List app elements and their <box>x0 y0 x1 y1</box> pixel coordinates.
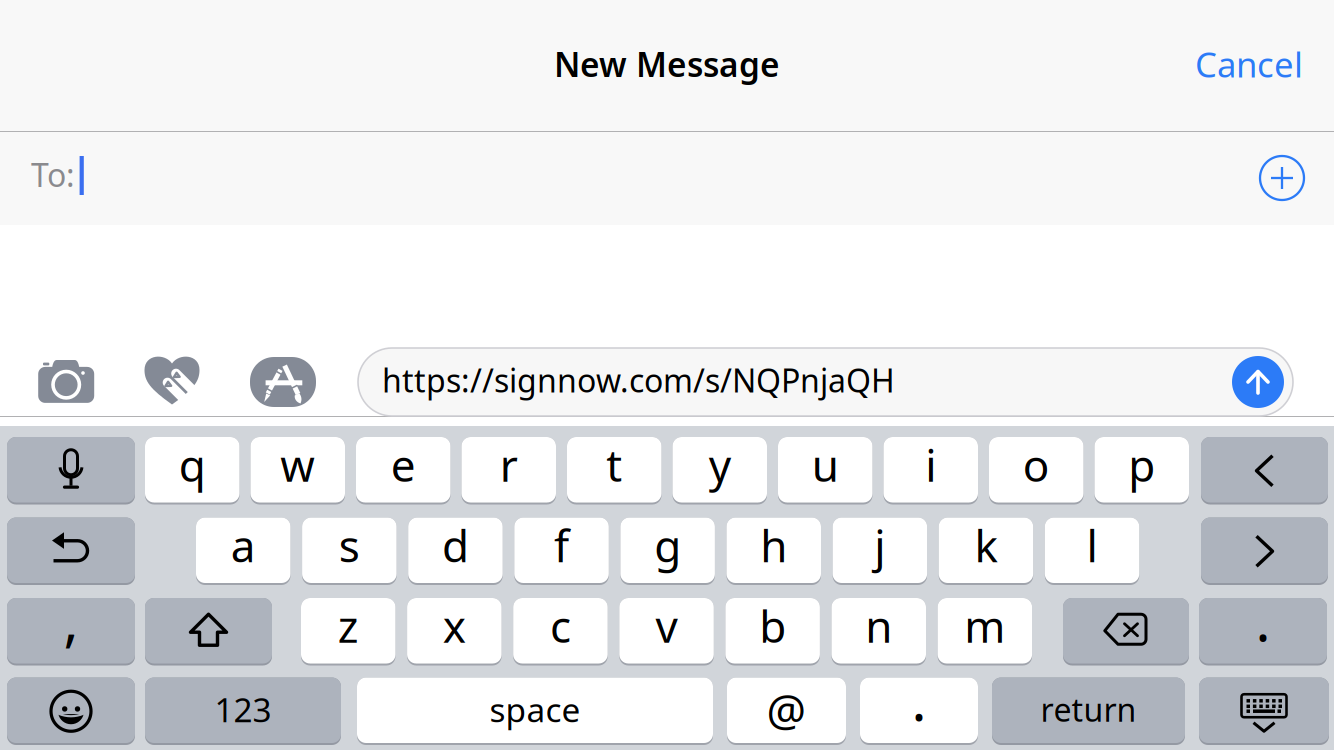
staticText: r <box>500 435 518 494</box>
button[interactable]: g <box>620 517 715 585</box>
button[interactable]: p <box>1094 437 1189 504</box>
staticText: c <box>550 596 571 655</box>
staticText: v <box>655 596 677 655</box>
button[interactable]: Emoji <box>7 677 135 745</box>
button[interactable]: . <box>860 677 978 745</box>
button[interactable]: Send <box>1232 356 1284 408</box>
button[interactable]: Hide Keyboard <box>1199 677 1329 745</box>
staticText: Cancel <box>1195 41 1303 87</box>
button[interactable]: h <box>726 517 821 585</box>
staticText: m <box>964 596 1005 655</box>
button[interactable]: f <box>514 517 609 585</box>
button[interactable]: a <box>196 517 290 585</box>
button[interactable]: d <box>408 517 503 585</box>
button[interactable]: w <box>250 437 345 504</box>
button[interactable]: y <box>672 437 767 504</box>
button[interactable]: k <box>939 517 1033 585</box>
staticText: e <box>391 435 416 494</box>
button[interactable]: App Store <box>250 357 316 409</box>
button[interactable]: q <box>145 437 239 504</box>
staticText: . <box>1255 583 1270 657</box>
button[interactable]: Cancel <box>1123 0 1303 130</box>
button[interactable]: m <box>938 598 1032 665</box>
button[interactable]: Next <box>1201 517 1328 585</box>
staticText: return <box>1040 688 1136 730</box>
staticText: a <box>231 516 256 574</box>
button[interactable]: Camera <box>38 360 96 410</box>
button[interactable]: v <box>619 598 714 665</box>
button[interactable]: l <box>1045 517 1139 585</box>
button[interactable]: Digital Touch <box>144 355 210 415</box>
staticText: q <box>179 435 206 494</box>
button[interactable]: s <box>302 517 397 585</box>
button[interactable]: o <box>989 437 1083 504</box>
button[interactable]: return <box>992 677 1185 745</box>
button[interactable]: Undo <box>7 517 135 585</box>
staticText: @ <box>766 680 806 738</box>
button[interactable]: t <box>567 437 661 504</box>
staticText: New Message <box>554 42 780 86</box>
staticText: x <box>443 596 466 655</box>
button[interactable]: c <box>513 598 608 665</box>
staticText: o <box>1023 435 1050 494</box>
staticText: b <box>759 596 786 655</box>
staticText: g <box>654 516 681 574</box>
button[interactable]: n <box>831 598 926 665</box>
staticText: h <box>760 516 787 574</box>
button[interactable]: i <box>883 437 978 504</box>
staticText: https://signnow.com/s/NQPnjaQH <box>382 359 895 401</box>
button[interactable]: Previous <box>1201 437 1328 504</box>
button[interactable]: 123 <box>145 677 341 745</box>
staticText: z <box>338 596 359 655</box>
button[interactable]: space <box>357 677 713 745</box>
button[interactable]: e <box>356 437 450 504</box>
staticText: To: <box>31 153 75 196</box>
button[interactable]: . <box>1199 598 1327 665</box>
staticText: y <box>709 435 731 494</box>
staticText: space <box>489 687 580 731</box>
button[interactable]: Delete <box>1063 598 1189 665</box>
staticText: l <box>1086 516 1097 574</box>
staticText: d <box>442 516 469 574</box>
button[interactable]: Shift <box>145 598 272 665</box>
staticText: f <box>554 516 569 574</box>
staticText: j <box>874 516 885 574</box>
staticText: t <box>606 435 622 494</box>
staticText: w <box>280 435 315 494</box>
button[interactable]: u <box>778 437 872 504</box>
button[interactable]: b <box>725 598 820 665</box>
button[interactable]: , <box>7 598 135 665</box>
button[interactable]: Dictation <box>7 437 135 504</box>
button[interactable]: r <box>461 437 556 504</box>
staticText: . <box>911 662 926 736</box>
button[interactable]: @ <box>727 677 846 745</box>
button[interactable]: x <box>407 598 502 665</box>
staticText: k <box>974 516 997 574</box>
staticText: i <box>925 435 936 494</box>
button[interactable]: z <box>301 598 395 665</box>
staticText: 123 <box>214 687 271 731</box>
button[interactable]: j <box>833 517 927 585</box>
staticText: s <box>339 516 360 574</box>
button[interactable]: Add contact <box>1260 156 1304 200</box>
staticText: , <box>63 583 78 657</box>
staticText: n <box>865 596 892 655</box>
staticText: u <box>812 435 839 494</box>
staticText: p <box>1128 435 1155 494</box>
